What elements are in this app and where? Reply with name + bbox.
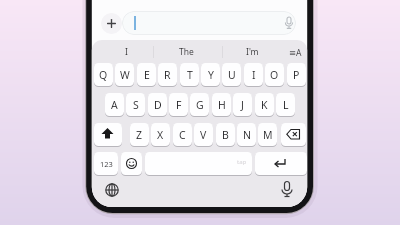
button[interactable]: X — [151, 123, 170, 146]
staticText: R — [164, 68, 171, 82]
staticText: B — [222, 128, 229, 142]
button[interactable]: G — [190, 93, 209, 116]
button[interactable]: W — [115, 63, 134, 86]
staticText: J — [241, 98, 244, 112]
button[interactable]: Q — [94, 63, 113, 86]
button[interactable]: R — [158, 63, 177, 86]
button[interactable]: I — [113, 44, 139, 60]
staticText: U — [228, 68, 236, 82]
staticText: 123 — [100, 159, 113, 169]
staticText: P — [293, 68, 300, 82]
staticText: ≡A — [289, 47, 302, 59]
staticText: I — [125, 46, 128, 58]
button[interactable]: Z — [130, 123, 149, 146]
staticText: tap — [237, 158, 247, 166]
button[interactable]: A — [105, 93, 124, 116]
staticText: I — [252, 68, 256, 82]
staticText: F — [176, 98, 182, 112]
button[interactable] — [279, 180, 295, 198]
button[interactable]: T — [180, 63, 199, 86]
button[interactable]: N — [237, 123, 256, 146]
staticText: D — [154, 98, 162, 112]
button[interactable]: J — [233, 93, 252, 116]
button[interactable]: I — [244, 63, 263, 86]
staticText: V — [200, 128, 207, 142]
staticText: Q — [99, 68, 108, 82]
button[interactable]: U — [222, 63, 241, 86]
staticText: T — [187, 68, 193, 82]
button[interactable]: M — [258, 123, 277, 146]
button[interactable]: F — [169, 93, 188, 116]
staticText: G — [196, 98, 204, 112]
button[interactable]: Y — [201, 63, 220, 86]
button[interactable]: H — [212, 93, 231, 116]
staticText: O — [270, 68, 279, 82]
button[interactable]: K — [255, 93, 274, 116]
staticText: K — [261, 98, 268, 112]
button[interactable]: S — [126, 93, 145, 116]
button[interactable] — [94, 123, 122, 146]
staticText: X — [157, 128, 164, 142]
staticText: S — [133, 98, 139, 112]
button[interactable]: L — [276, 93, 295, 116]
button[interactable] — [121, 152, 142, 175]
staticText: E — [144, 68, 150, 82]
button[interactable]: P — [287, 63, 306, 86]
staticText: Y — [208, 68, 214, 82]
button[interactable]: I'm — [239, 44, 265, 60]
staticText: C — [179, 128, 186, 142]
staticText: I'm — [246, 46, 259, 58]
button[interactable]: B — [216, 123, 235, 146]
staticText: A — [111, 98, 118, 112]
staticText: Z — [136, 128, 143, 142]
button[interactable]: O — [265, 63, 284, 86]
staticText: N — [243, 128, 251, 142]
button[interactable]: 123 — [94, 152, 118, 175]
button[interactable]: The — [173, 44, 199, 60]
button[interactable]: E — [137, 63, 156, 86]
staticText: M — [263, 128, 273, 142]
button[interactable] — [101, 13, 122, 34]
button[interactable]: D — [148, 93, 167, 116]
button[interactable] — [281, 123, 306, 146]
staticText: W — [120, 68, 130, 82]
button[interactable]: C — [173, 123, 192, 146]
button[interactable]: ≡A — [286, 46, 304, 60]
button[interactable] — [104, 182, 120, 198]
button[interactable] — [122, 11, 296, 35]
staticText: H — [218, 98, 226, 112]
staticText: L — [283, 98, 289, 112]
button[interactable]: V — [194, 123, 213, 146]
button[interactable] — [255, 152, 307, 175]
button[interactable] — [145, 152, 252, 175]
staticText: The — [179, 46, 194, 58]
